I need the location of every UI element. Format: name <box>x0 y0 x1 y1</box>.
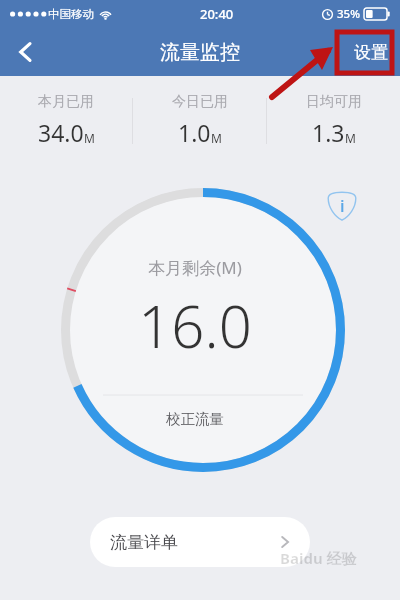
staticText: 校正流量 <box>166 410 224 428</box>
button[interactable]: 返回 <box>4 30 48 74</box>
staticText: 中国移动 <box>48 7 94 21</box>
staticText: 34.0 <box>38 117 84 148</box>
button[interactable]: 校正流量 <box>146 404 244 434</box>
staticText: 设置 <box>354 42 388 63</box>
staticText: 流量详单 <box>110 532 178 553</box>
staticText: 今日已用 <box>172 93 228 111</box>
staticText: M <box>345 130 356 146</box>
staticText: 16.0 <box>138 286 252 365</box>
button[interactable]: 今日已用 <box>133 76 266 164</box>
button[interactable]: 说明 <box>322 186 362 226</box>
staticText: 日均可用 <box>306 93 362 111</box>
staticText: 本月已用 <box>38 93 94 111</box>
button[interactable]: 设置 <box>350 36 392 69</box>
staticText: 35% <box>337 6 360 22</box>
staticText: 流量监控 <box>160 40 240 65</box>
staticText: M <box>211 130 222 146</box>
staticText: 本月剩余(M) <box>148 256 242 279</box>
button[interactable]: 流量详单 <box>90 517 310 567</box>
staticText: 1.0 <box>178 117 211 148</box>
staticText: i <box>340 194 345 217</box>
staticText: 20:40 <box>200 5 234 23</box>
staticText: M <box>84 130 95 146</box>
button[interactable]: 本月已用 <box>0 76 132 164</box>
staticText: Baidu 经验 <box>280 548 357 568</box>
staticText: 1.3 <box>312 117 345 148</box>
button[interactable]: 日均可用 <box>267 76 400 164</box>
